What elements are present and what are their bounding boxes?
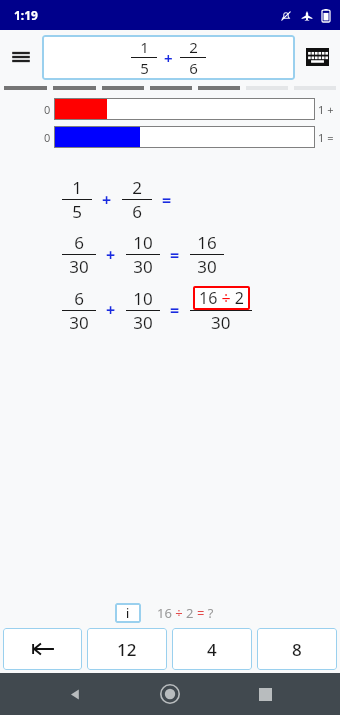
staticText: 30 [197, 255, 217, 278]
button[interactable]: Keyboard [295, 30, 340, 84]
staticText: = [162, 189, 172, 211]
staticText: 16 ÷ 2 [199, 287, 244, 309]
staticText: 6 [74, 231, 84, 254]
staticText: 4 [207, 638, 217, 661]
staticText: + [164, 48, 173, 68]
staticText: 16 ÷ 2 = ? [157, 604, 214, 622]
staticText: 5 [72, 200, 82, 223]
button[interactable]: 12 [87, 628, 167, 670]
button[interactable]: Home [150, 674, 190, 714]
staticText: 30 [133, 311, 153, 334]
button[interactable]: 1 [42, 35, 295, 80]
staticText: 30 [133, 255, 153, 278]
staticText: 0 [44, 102, 51, 117]
staticText: 2 [132, 176, 142, 199]
staticText: i [126, 605, 130, 621]
button[interactable]: 8 [257, 628, 337, 670]
button[interactable]: 4 [172, 628, 252, 670]
staticText: 2 [189, 37, 198, 57]
staticText: + [102, 189, 112, 211]
staticText: 5 [140, 58, 149, 78]
staticText: 30 [69, 311, 89, 334]
staticText: + [106, 299, 116, 321]
button[interactable]: Info [115, 603, 141, 623]
staticText: 1 [140, 37, 149, 57]
button[interactable]: Recents [245, 674, 285, 714]
staticText: 30 [211, 311, 231, 334]
staticText: 6 [74, 287, 84, 310]
staticText: + [106, 244, 116, 266]
staticText: 1 [72, 176, 82, 199]
staticText: 16 [197, 231, 217, 254]
staticText: 10 [133, 231, 153, 254]
staticText: 1 = [318, 130, 334, 145]
staticText: = [170, 244, 180, 266]
button[interactable]: Back [55, 674, 95, 714]
staticText: 1:19 [14, 7, 38, 23]
staticText: 0 [44, 130, 51, 145]
staticText: = [170, 299, 180, 321]
button[interactable]: Menu [0, 30, 42, 84]
staticText: 6 [189, 58, 198, 78]
staticText: 1 + [318, 102, 334, 117]
staticText: 10 [133, 287, 153, 310]
button[interactable]: Back [3, 628, 82, 670]
staticText: 6 [132, 200, 142, 223]
staticText: 12 [117, 638, 137, 661]
staticText: 8 [292, 638, 302, 661]
staticText: 30 [69, 255, 89, 278]
